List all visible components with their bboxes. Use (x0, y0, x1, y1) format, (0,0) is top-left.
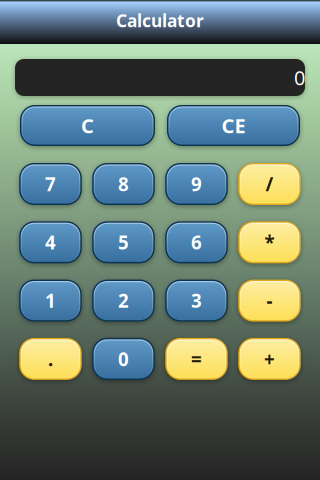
staticText: 6 (191, 230, 202, 255)
staticText: / (265, 172, 273, 196)
button[interactable]: 9 (165, 163, 228, 205)
button[interactable]: 1 (19, 280, 82, 322)
staticText: . (48, 346, 53, 371)
staticText: 8 (118, 172, 129, 196)
staticText: CE (221, 112, 245, 139)
button[interactable]: + (238, 338, 301, 380)
staticText: 3 (191, 288, 202, 313)
button[interactable]: 7 (19, 163, 82, 205)
staticText: * (264, 230, 274, 255)
button[interactable]: 2 (92, 280, 155, 322)
staticText: Calculator (116, 9, 204, 32)
button[interactable]: . (19, 338, 82, 380)
staticText: 4 (45, 230, 56, 255)
staticText: 9 (191, 172, 202, 196)
button[interactable]: - (238, 280, 301, 322)
button[interactable]: C (20, 105, 155, 146)
staticText: 5 (118, 230, 129, 255)
button[interactable]: * (238, 221, 301, 263)
staticText: 1 (45, 288, 56, 313)
staticText: C (81, 112, 94, 139)
button[interactable]: 3 (165, 280, 228, 322)
button[interactable]: 5 (92, 221, 155, 263)
button[interactable]: 4 (19, 221, 82, 263)
staticText: + (264, 346, 275, 371)
button[interactable]: CE (167, 105, 300, 146)
staticText: 7 (45, 172, 56, 196)
button[interactable]: 6 (165, 221, 228, 263)
button[interactable]: = (165, 338, 228, 380)
staticText: 2 (118, 288, 129, 313)
staticText: = (191, 346, 202, 371)
button[interactable]: / (238, 163, 301, 205)
staticText: - (266, 288, 272, 313)
button[interactable]: 0 (92, 338, 155, 380)
staticText: 0 (294, 64, 305, 91)
staticText: 0 (118, 346, 129, 371)
button[interactable]: 8 (92, 163, 155, 205)
